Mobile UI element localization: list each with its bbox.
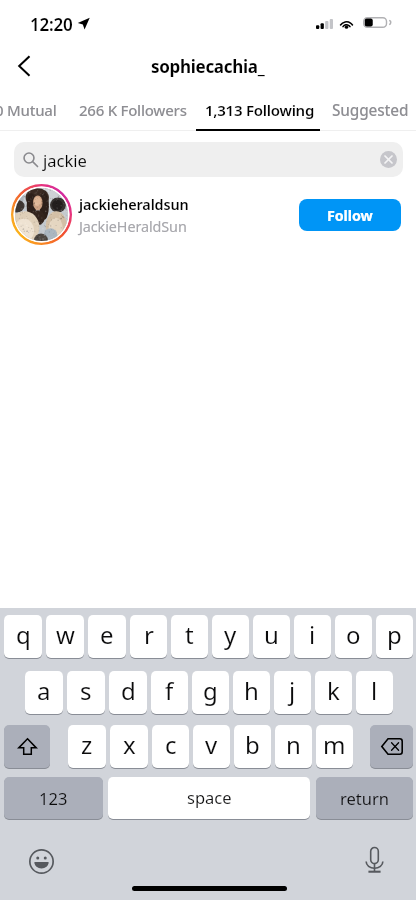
staticText: JackieHeraldSun: [79, 217, 187, 237]
button[interactable]: Clear search: [380, 151, 397, 168]
button[interactable]: h: [233, 671, 270, 714]
staticText: y: [224, 618, 237, 651]
button[interactable]: p: [376, 615, 413, 658]
button[interactable]: return: [316, 777, 413, 819]
staticText: sophiecachia_: [151, 55, 265, 78]
staticText: c: [165, 728, 177, 761]
button[interactable]: Dictation: [358, 843, 391, 876]
button[interactable]: m: [316, 725, 353, 768]
staticText: 123: [39, 787, 68, 809]
staticText: l: [371, 674, 378, 707]
staticText: Suggested: [332, 100, 409, 121]
button[interactable]: z: [68, 725, 106, 768]
staticText: a: [37, 674, 51, 707]
staticText: d: [121, 674, 136, 707]
button[interactable]: Follow: [299, 199, 401, 231]
button[interactable]: n: [275, 725, 312, 768]
button[interactable]: e: [88, 615, 126, 658]
staticText: jackie: [43, 149, 87, 171]
button[interactable]: Shift: [4, 725, 50, 768]
button[interactable]: k: [315, 671, 352, 714]
button[interactable]: s: [67, 671, 105, 714]
staticText: e: [100, 618, 114, 651]
button[interactable]: t: [171, 615, 208, 658]
staticText: r: [144, 618, 154, 651]
staticText: m: [323, 728, 346, 761]
staticText: jackieheraldsun: [79, 195, 189, 215]
staticText: p: [387, 618, 402, 651]
staticText: 266 K Followers: [79, 100, 187, 120]
button[interactable]: x: [110, 725, 148, 768]
button[interactable]: i: [294, 615, 331, 658]
staticText: 12:20: [30, 13, 73, 36]
button[interactable]: y: [212, 615, 249, 658]
button[interactable]: q: [4, 615, 42, 658]
button[interactable]: o: [335, 615, 372, 658]
staticText: 0 Mutual: [0, 100, 57, 120]
button[interactable]: Emoji keyboard: [25, 845, 57, 877]
staticText: s: [80, 674, 92, 707]
button[interactable]: Back: [0, 43, 46, 89]
button[interactable]: u: [253, 615, 290, 658]
button[interactable]: w: [46, 615, 84, 658]
staticText: z: [81, 728, 93, 761]
button[interactable]: j: [274, 671, 311, 714]
button[interactable]: l: [356, 671, 393, 714]
staticText: w: [56, 618, 75, 651]
staticText: x: [123, 728, 136, 761]
button[interactable]: jackie: [14, 142, 403, 177]
staticText: b: [245, 728, 260, 761]
staticText: n: [286, 728, 301, 761]
button[interactable]: c: [152, 725, 189, 768]
staticText: Follow: [327, 206, 373, 225]
staticText: j: [289, 674, 296, 707]
staticText: o: [346, 618, 361, 651]
staticText: g: [203, 674, 218, 707]
button[interactable]: g: [192, 671, 229, 714]
button[interactable]: 0 Mutual: [0, 89, 75, 131]
button[interactable]: Suggested: [321, 89, 416, 131]
button[interactable]: b: [234, 725, 271, 768]
staticText: u: [264, 618, 279, 651]
staticText: i: [309, 618, 316, 651]
button[interactable]: d: [109, 671, 147, 714]
staticText: 1,313 Following: [205, 100, 315, 120]
button[interactable]: space: [108, 777, 310, 819]
staticText: q: [16, 618, 31, 651]
staticText: f: [165, 674, 174, 707]
button[interactable]: a: [25, 671, 63, 714]
staticText: v: [205, 728, 218, 761]
button[interactable]: v: [193, 725, 230, 768]
staticText: h: [244, 674, 259, 707]
staticText: t: [185, 618, 194, 651]
button[interactable]: Backspace: [370, 725, 413, 768]
staticText: return: [340, 787, 389, 809]
button[interactable]: f: [151, 671, 188, 714]
button[interactable]: jackieheraldsun: [0, 183, 416, 245]
button[interactable]: 266 K Followers: [70, 89, 196, 131]
button[interactable]: r: [130, 615, 167, 658]
button[interactable]: 123: [4, 777, 103, 819]
button[interactable]: 1,313 Following: [198, 89, 322, 131]
staticText: k: [327, 674, 340, 707]
staticText: space: [187, 786, 232, 808]
